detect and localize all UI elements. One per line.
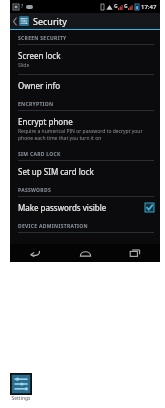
staticText: ?	[21, 3, 24, 10]
staticText: Encrypt phone	[18, 116, 73, 127]
button[interactable]: Make passwords visible	[10, 197, 160, 218]
staticText: Set up SIM card lock	[18, 166, 94, 177]
button[interactable]: Home	[60, 244, 110, 262]
button[interactable]: Owner info	[10, 75, 160, 96]
button[interactable]: Recent apps	[110, 244, 160, 262]
staticText: G	[124, 3, 128, 10]
staticText: 17:47	[141, 3, 157, 11]
staticText: SIM CARD LOCK	[18, 151, 61, 158]
button[interactable]: Encrypt phone	[10, 111, 160, 146]
button[interactable]: Back	[10, 244, 60, 262]
staticText: PASSWORDS	[18, 187, 51, 194]
staticText: Make passwords visible	[18, 202, 107, 213]
staticText: Require a numerical PIN or password to d…	[18, 128, 143, 141]
staticText: ENCRYPTION	[18, 101, 54, 108]
staticText: SCREEN SECURITY	[18, 35, 67, 42]
staticText: DEVICE ADMINISTRATION	[18, 223, 88, 230]
staticText: Slide	[18, 62, 30, 69]
staticText: Security	[33, 15, 67, 27]
button[interactable]: Navigate up	[10, 13, 160, 29]
button[interactable]: Settings	[10, 373, 32, 402]
staticText: G	[114, 3, 118, 10]
staticText: Screen lock	[18, 50, 61, 61]
staticText: Settings	[11, 395, 31, 402]
staticText: Owner info	[18, 80, 60, 91]
button[interactable]: Set up SIM card lock	[10, 161, 160, 182]
button[interactable]: Screen lock	[10, 45, 160, 75]
